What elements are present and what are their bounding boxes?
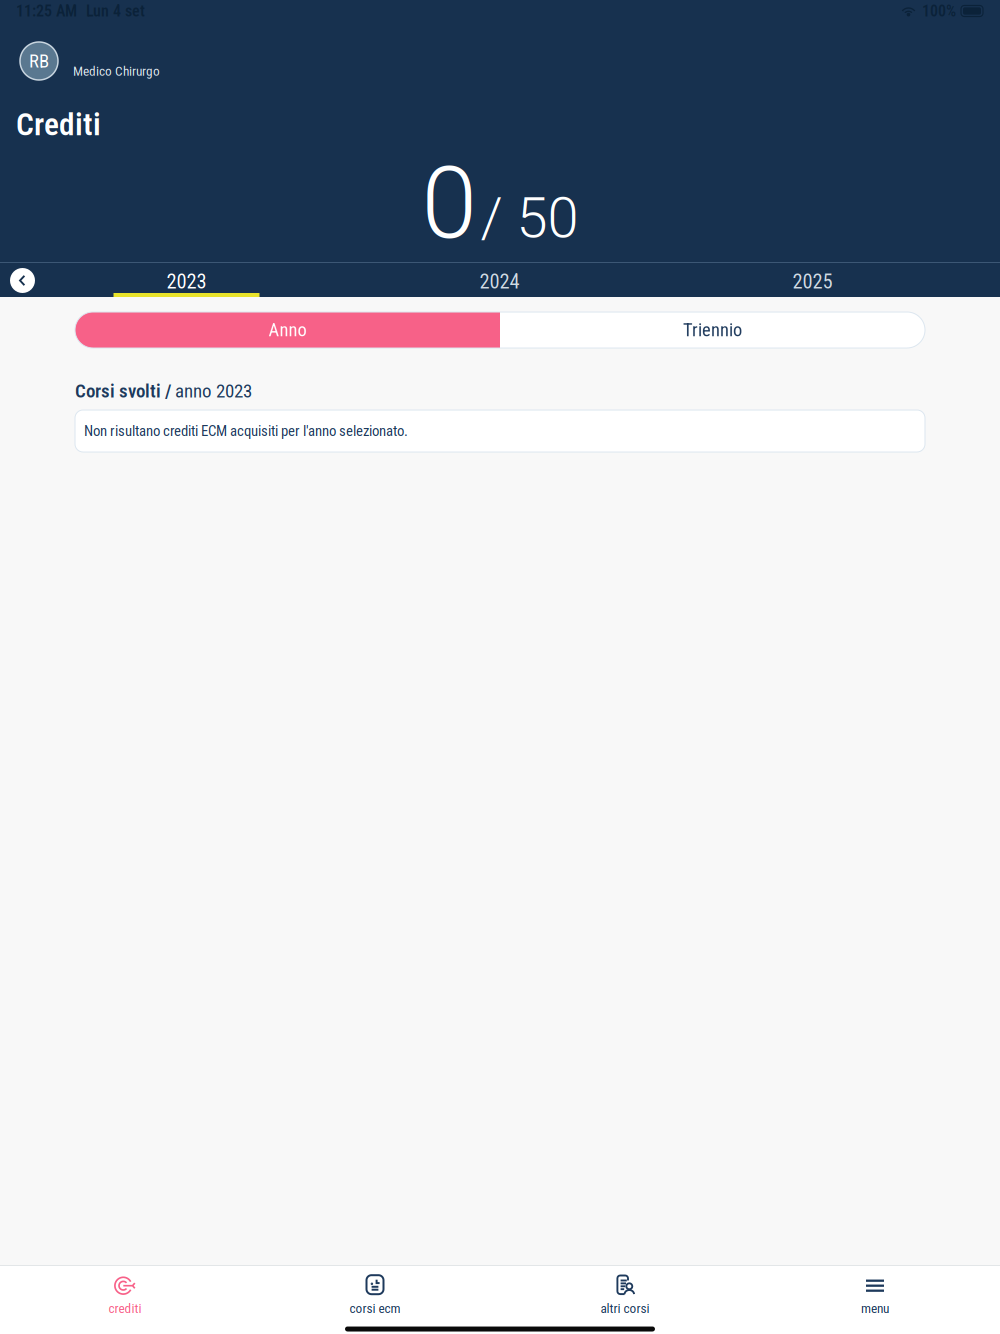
button[interactable]: Anno <box>75 312 500 348</box>
staticText: anno 2023 <box>171 380 252 402</box>
staticText: Triennio <box>683 319 742 341</box>
staticText: RB <box>29 50 49 72</box>
button[interactable]: 2024 <box>343 263 656 298</box>
button[interactable]: altri corsi <box>500 1266 750 1323</box>
staticText: 11:25 AM <box>16 2 77 20</box>
button[interactable]: menu <box>750 1266 1000 1323</box>
staticText: crediti <box>108 1301 141 1316</box>
button[interactable]: 2025 <box>656 263 969 298</box>
staticText: Corsi svolti / <box>75 380 171 402</box>
staticText: Medico Chirurgo <box>73 63 160 79</box>
staticText: Lun 4 set <box>86 2 145 20</box>
staticText: Non risultano crediti ECM acquisiti per … <box>84 422 408 440</box>
staticText: 2024 <box>479 269 519 294</box>
button[interactable]: Indietro <box>10 268 35 293</box>
button[interactable]: crediti <box>0 1266 250 1323</box>
staticText: Anno <box>268 319 306 341</box>
staticText: Crediti <box>16 106 101 143</box>
staticText: altri corsi <box>600 1301 649 1316</box>
button[interactable]: Profilo utente <box>20 42 58 80</box>
staticText: 0 <box>421 145 476 262</box>
staticText: 100% <box>922 2 956 20</box>
staticText: 2025 <box>792 269 832 294</box>
staticText: corsi ecm <box>349 1301 400 1316</box>
button[interactable]: 2023 <box>30 263 343 298</box>
staticText: menu <box>861 1301 889 1316</box>
button[interactable]: Triennio <box>500 312 925 348</box>
staticText: / 50 <box>480 185 578 251</box>
staticText: 2023 <box>166 269 206 294</box>
button[interactable]: corsi ecm <box>250 1266 500 1323</box>
